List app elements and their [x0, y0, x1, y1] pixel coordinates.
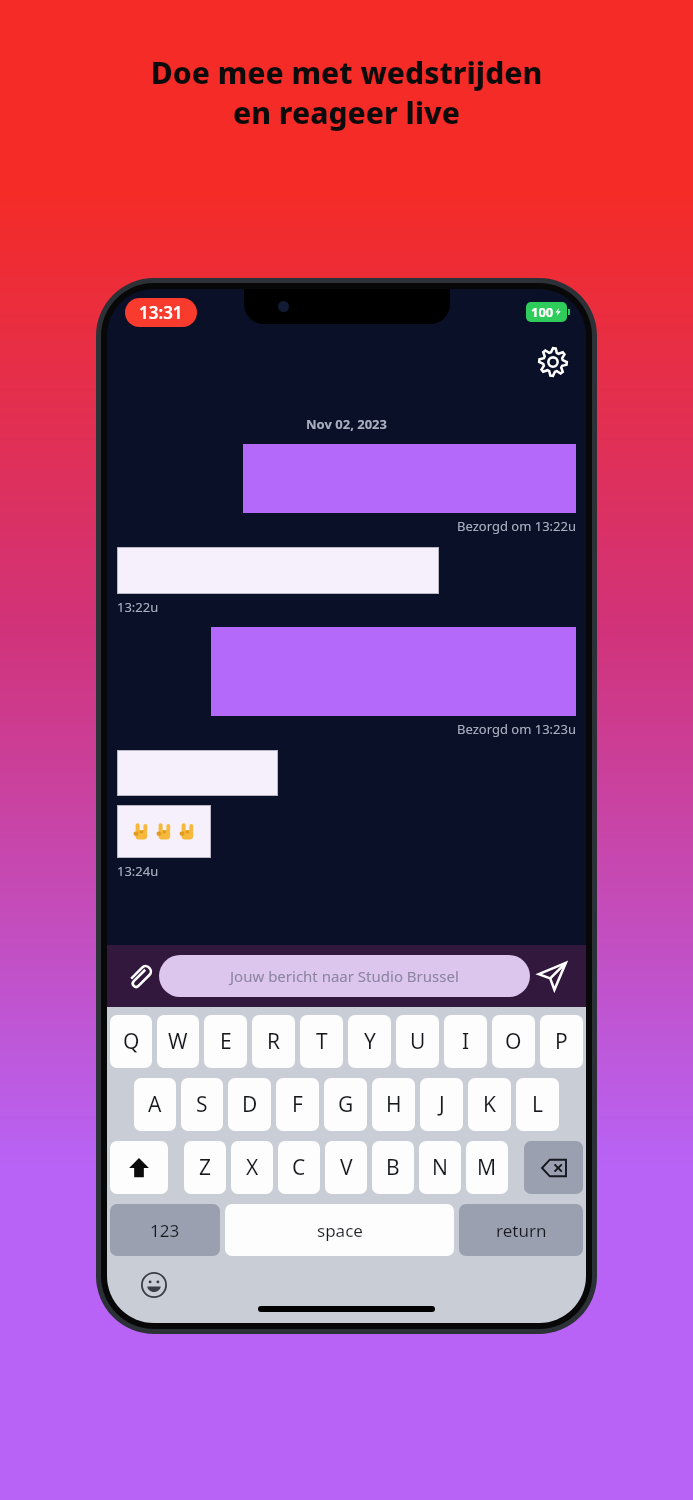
button[interactable]: [117, 805, 211, 858]
staticText: 13:24u: [117, 862, 159, 880]
staticText: G: [338, 1090, 354, 1119]
staticText: return: [496, 1219, 547, 1242]
staticText: 123: [150, 1219, 180, 1242]
button[interactable]: Shift: [110, 1141, 168, 1194]
button[interactable]: Backspace: [524, 1141, 583, 1194]
staticText: C: [292, 1153, 306, 1182]
staticText: F: [292, 1090, 303, 1119]
staticText: N: [432, 1153, 448, 1182]
staticText: Y: [364, 1027, 376, 1056]
button[interactable]: P: [540, 1015, 583, 1068]
button[interactable]: [117, 750, 278, 796]
button[interactable]: Z: [184, 1141, 226, 1194]
staticText: T: [316, 1027, 328, 1056]
button[interactable]: [117, 547, 439, 594]
button[interactable]: V: [325, 1141, 367, 1194]
staticText: E: [220, 1027, 232, 1056]
button[interactable]: A: [134, 1078, 176, 1131]
button[interactable]: G: [324, 1078, 367, 1131]
staticText: R: [267, 1027, 281, 1056]
button[interactable]: K: [468, 1078, 511, 1131]
button[interactable]: X: [231, 1141, 273, 1194]
staticText: Jouw bericht naar Studio Brussel: [230, 966, 459, 986]
staticText: H: [386, 1090, 402, 1119]
staticText: K: [483, 1090, 496, 1119]
button[interactable]: return: [459, 1204, 583, 1256]
staticText: 13:31: [139, 301, 183, 324]
button[interactable]: O: [492, 1015, 535, 1068]
button[interactable]: T: [300, 1015, 343, 1068]
staticText: X: [246, 1153, 259, 1182]
staticText: W: [168, 1027, 188, 1056]
staticText: space: [317, 1219, 363, 1242]
staticText: B: [386, 1153, 400, 1182]
staticText: D: [242, 1090, 258, 1119]
staticText: P: [555, 1027, 568, 1056]
button[interactable]: N: [419, 1141, 461, 1194]
staticText: 100: [531, 303, 554, 321]
button[interactable]: Attach file: [119, 956, 159, 996]
button[interactable]: Send: [530, 954, 574, 998]
staticText: L: [532, 1090, 544, 1119]
button[interactable]: space: [225, 1204, 454, 1256]
button[interactable]: F: [276, 1078, 319, 1131]
staticText: O: [505, 1027, 522, 1056]
button[interactable]: E: [204, 1015, 247, 1068]
button[interactable]: W: [157, 1015, 199, 1068]
button[interactable]: S: [181, 1078, 223, 1131]
button[interactable]: B: [372, 1141, 414, 1194]
button[interactable]: Y: [348, 1015, 391, 1068]
staticText: Q: [123, 1027, 140, 1056]
button[interactable]: Q: [110, 1015, 152, 1068]
button[interactable]: Jouw bericht naar Studio Brussel: [159, 955, 530, 997]
button[interactable]: U: [396, 1015, 439, 1068]
staticText: V: [340, 1153, 353, 1182]
button[interactable]: I: [444, 1015, 487, 1068]
staticText: Bezorgd om 13:22u: [117, 517, 576, 535]
staticText: Z: [199, 1153, 212, 1182]
staticText: A: [148, 1090, 162, 1119]
staticText: Nov 02, 2023: [117, 415, 576, 433]
button[interactable]: Settings: [534, 343, 572, 381]
staticText: M: [477, 1153, 497, 1182]
staticText: I: [462, 1027, 470, 1056]
staticText: J: [439, 1090, 445, 1119]
button[interactable]: Emoji: [139, 1270, 169, 1300]
staticText: 13:22u: [117, 598, 159, 616]
staticText: Bezorgd om 13:23u: [117, 720, 576, 738]
staticText: U: [410, 1027, 426, 1056]
button[interactable]: R: [252, 1015, 295, 1068]
button[interactable]: C: [278, 1141, 320, 1194]
staticText: S: [196, 1090, 208, 1119]
button[interactable]: M: [466, 1141, 508, 1194]
staticText: Doe mee met wedstrijden en reageer live: [0, 52, 693, 133]
button[interactable]: D: [228, 1078, 271, 1131]
button[interactable]: L: [516, 1078, 559, 1131]
button[interactable]: 123: [110, 1204, 220, 1256]
button[interactable]: J: [420, 1078, 463, 1131]
button[interactable]: H: [372, 1078, 415, 1131]
